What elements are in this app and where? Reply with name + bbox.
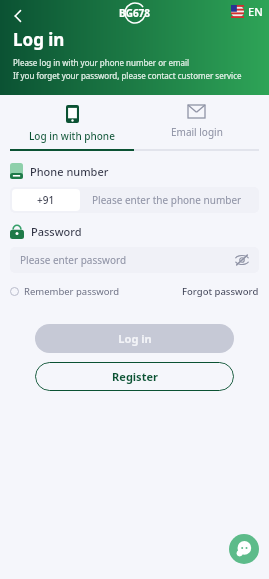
- staticText: Please enter password: [20, 253, 233, 267]
- button[interactable]: Remember password: [10, 285, 120, 298]
- staticText: Remember password: [24, 285, 120, 298]
- staticText: EN: [248, 4, 263, 19]
- staticText: Email login: [171, 125, 223, 139]
- staticText: Forgot password: [182, 285, 259, 298]
- staticText: Register: [112, 369, 158, 384]
- staticText: Log in: [13, 28, 65, 51]
- staticText: +91: [37, 193, 55, 207]
- staticText: Password: [31, 224, 82, 239]
- button[interactable]: Show password: [233, 251, 251, 269]
- button[interactable]: Email login: [134, 105, 259, 145]
- button[interactable]: EN: [231, 4, 263, 19]
- button[interactable]: Forgot password: [182, 285, 259, 298]
- staticText: Please log in with your phone number or …: [13, 57, 190, 68]
- staticText: BG678: [119, 6, 151, 20]
- staticText: Log in with phone: [29, 129, 115, 143]
- button[interactable]: Please enter the phone number: [82, 187, 259, 213]
- button[interactable]: Log in with phone: [10, 105, 134, 149]
- button[interactable]: +91: [12, 189, 80, 211]
- button[interactable]: Please enter password: [10, 247, 259, 273]
- button[interactable]: Register: [35, 362, 234, 391]
- button[interactable]: Log in: [35, 324, 234, 353]
- staticText: Phone number: [30, 164, 109, 179]
- button[interactable]: Customer service chat: [229, 534, 259, 564]
- button[interactable]: Back: [4, 2, 32, 30]
- staticText: Please enter the phone number: [92, 193, 242, 207]
- staticText: Log in: [118, 331, 152, 346]
- staticText: If you forget your password, please cont…: [13, 70, 242, 81]
